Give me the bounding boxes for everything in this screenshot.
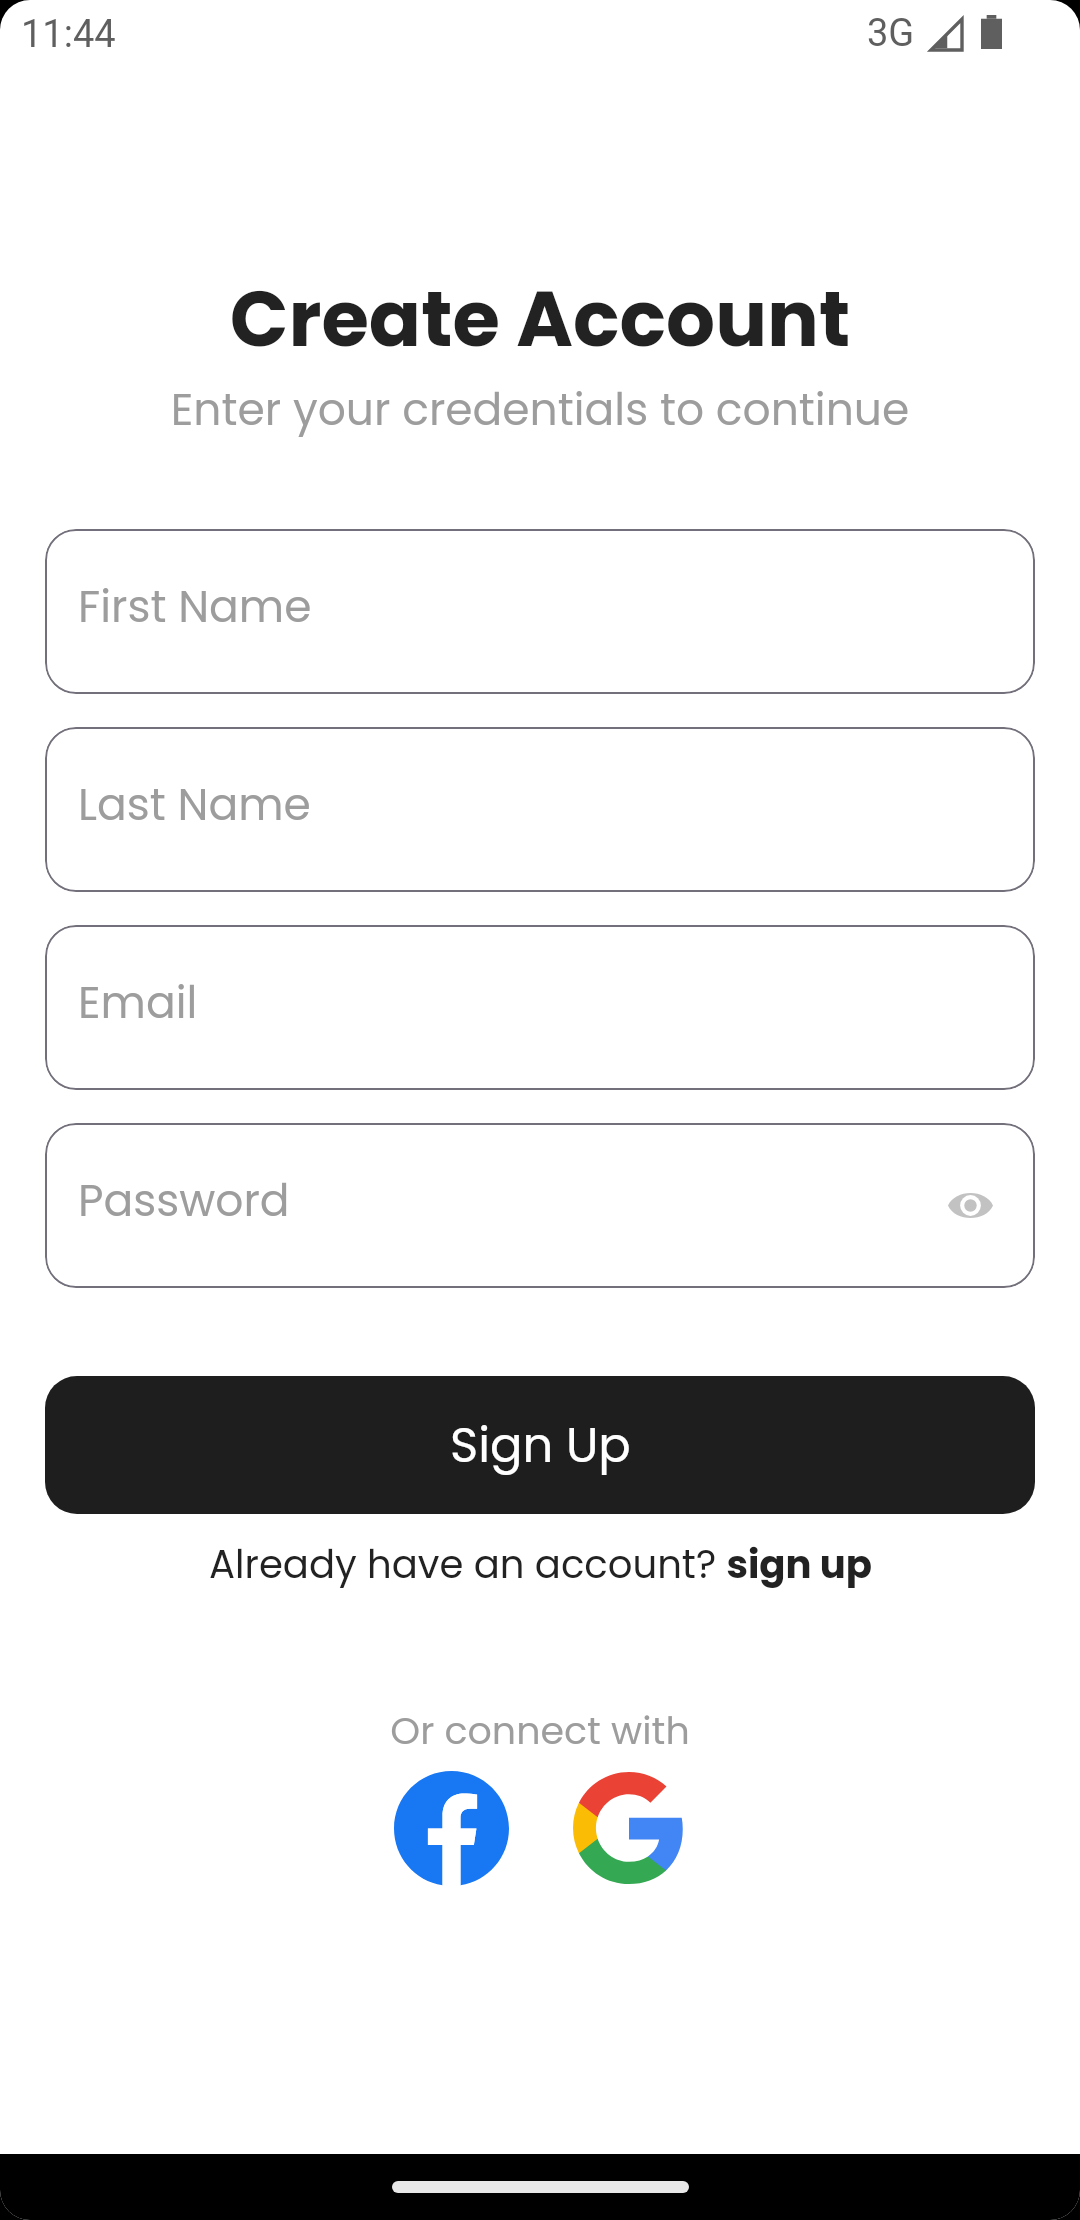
button[interactable]: Already have an account? sign up (201, 1533, 880, 1595)
button[interactable]: Sign in with Facebook (393, 1770, 509, 1886)
staticText: Already have an account? sign up (209, 1537, 872, 1591)
staticText: Create Account (0, 265, 1080, 373)
staticText: Last Name (78, 774, 311, 836)
button[interactable]: Last Name (45, 727, 1035, 892)
other: Show password (948, 1190, 993, 1221)
staticText: 3G (867, 11, 915, 56)
staticText: Enter your credentials to continue (0, 379, 1080, 441)
staticText: Email (78, 972, 198, 1034)
button[interactable]: Email (45, 925, 1035, 1090)
staticText: Password (78, 1170, 290, 1232)
button[interactable]: Sign Up (45, 1376, 1035, 1514)
staticText: Sign Up (450, 1412, 631, 1479)
staticText: Or connect with (0, 1704, 1080, 1757)
staticText: First Name (78, 576, 312, 638)
staticText: 11:44 (21, 12, 116, 57)
button[interactable]: Sign in with Google (571, 1770, 687, 1886)
button[interactable]: First Name (45, 529, 1035, 694)
button[interactable]: Password (45, 1123, 1035, 1288)
